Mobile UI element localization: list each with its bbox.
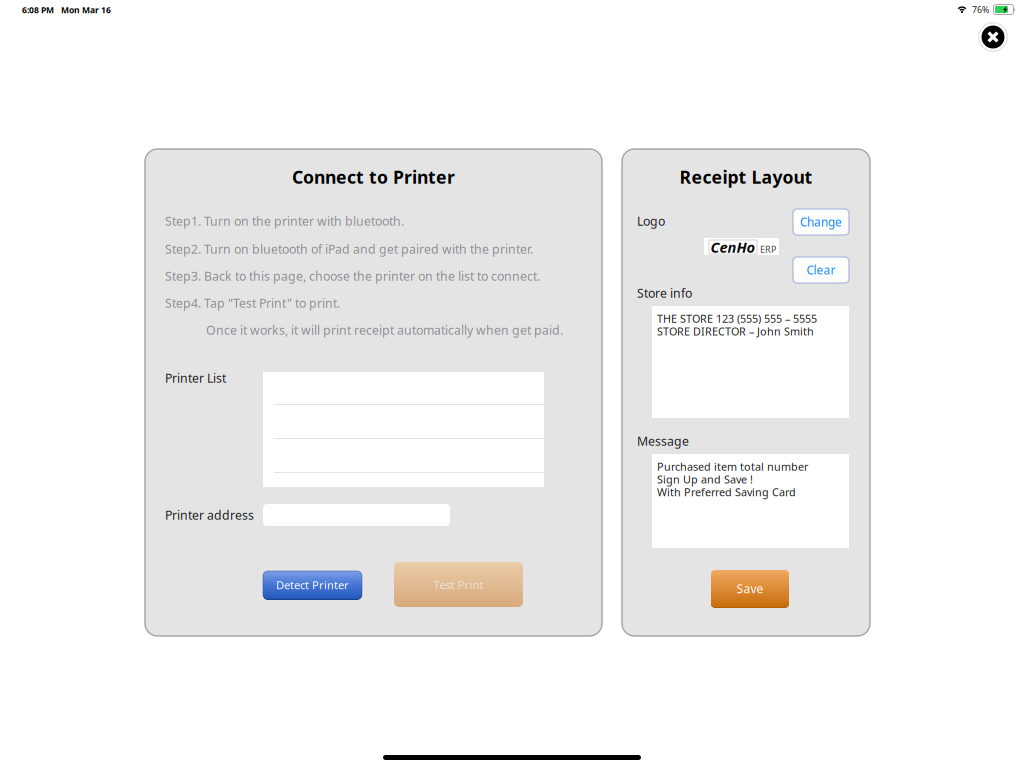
button[interactable]: Clear — [793, 257, 849, 283]
staticText: Message — [637, 433, 689, 449]
staticText: Printer address — [165, 507, 254, 523]
staticText: Store info — [637, 285, 692, 301]
button[interactable]: Detect Printer — [263, 571, 362, 599]
staticText: Connect to Printer — [292, 165, 455, 189]
staticText: Mon Mar 16 — [61, 4, 111, 16]
staticText: Step4. Tap "Test Print" to print. — [165, 295, 340, 311]
staticText: STORE DIRECTOR – John Smith — [657, 324, 814, 339]
staticText: 6:08 PM — [22, 4, 54, 16]
staticText: Step1. Turn on the printer with bluetoot… — [165, 213, 404, 229]
button[interactable]: Save — [711, 570, 789, 607]
staticText: Sign Up and Save ! — [657, 472, 753, 487]
staticText: With Preferred Saving Card — [657, 485, 796, 499]
staticText: CenHo — [710, 237, 755, 257]
staticText: Change — [800, 214, 842, 230]
staticText: Clear — [806, 262, 835, 278]
staticText: THE STORE 123 (555) 555 – 5555 — [657, 311, 817, 326]
button[interactable]: Test Print — [394, 562, 523, 607]
staticText: Step3. Back to this page, choose the pri… — [165, 268, 540, 284]
button[interactable]: Close — [978, 22, 1008, 52]
staticText: Once it works, it will print receipt aut… — [206, 322, 563, 338]
staticText: Test Print — [433, 577, 483, 592]
staticText: Save — [736, 580, 763, 597]
staticText: 76% — [972, 3, 989, 15]
staticText: Logo — [637, 213, 665, 229]
staticText: Receipt Layout — [679, 165, 812, 189]
button[interactable]: Change — [793, 209, 849, 235]
staticText: Detect Printer — [276, 577, 349, 593]
staticText: Purchased item total number — [657, 459, 808, 474]
staticText: Step2. Turn on bluetooth of iPad and get… — [165, 241, 533, 257]
staticText: Printer List — [165, 370, 226, 386]
staticText: ERP — [760, 243, 776, 255]
